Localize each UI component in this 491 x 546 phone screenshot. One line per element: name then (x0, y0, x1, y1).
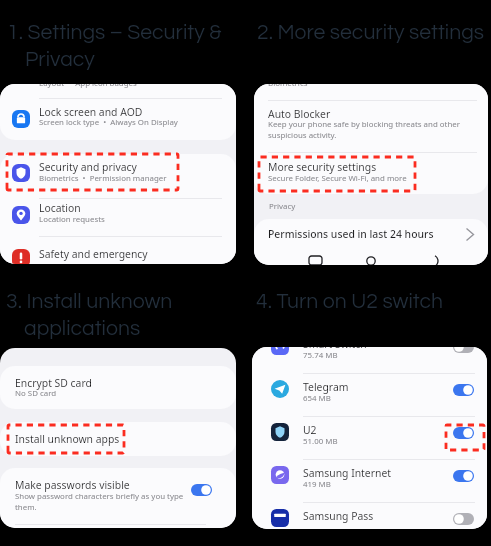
staticText: Keep your phone safe by blocking threats… (268, 119, 461, 141)
staticText: Lock screen and AOD (39, 105, 143, 119)
staticText: Screen lock type • Always On Display (39, 117, 178, 128)
staticText: More security settings (268, 160, 377, 174)
staticText: 654 MB (303, 393, 331, 404)
staticText: Location (39, 201, 81, 215)
staticText: U2 (303, 423, 317, 437)
button[interactable]: Switch on (453, 427, 474, 439)
button[interactable]: Install unknown apps (0, 422, 236, 456)
button[interactable]: Lock screen and AOD (0, 100, 236, 138)
button[interactable]: Security and privacy (0, 154, 236, 198)
staticText: Biometrics (268, 84, 308, 89)
button[interactable]: Samsung Internet (252, 461, 487, 503)
staticText: Encrypt SD card (15, 376, 92, 390)
button[interactable]: More security settings (254, 154, 488, 192)
staticText: Security and privacy (39, 160, 137, 174)
button[interactable]: Switch on (453, 470, 474, 482)
button[interactable]: Make passwords visible (0, 468, 236, 526)
staticText: Samsung Internet (303, 466, 392, 480)
button[interactable]: Switch on (191, 484, 212, 496)
staticText: 4. Turn on U2 switch (256, 291, 443, 313)
button[interactable]: Encrypt SD card (0, 366, 236, 409)
staticText: 419 MB (303, 479, 331, 490)
button[interactable]: Switch on (453, 384, 474, 396)
staticText: Privacy (269, 201, 296, 212)
button[interactable]: Auto Blocker (254, 104, 488, 148)
button[interactable]: Smart Switch (252, 347, 487, 374)
staticText: No SD card (15, 388, 57, 399)
staticText: Samsung Pass (303, 509, 374, 523)
staticText: Secure Folder, Secure Wi-Fi, and more (268, 173, 407, 184)
staticText: Install unknown apps (15, 432, 120, 446)
staticText: Biometrics • Permission manager (39, 173, 167, 184)
staticText: 1. Settings – Security & Privacy (7, 22, 222, 71)
button[interactable]: Switch off (453, 513, 474, 525)
staticText: 2. More security settings (257, 22, 484, 44)
staticText: Layout • App icon badges (39, 84, 137, 89)
button[interactable]: Safety and emergency (0, 236, 236, 264)
staticText: Smart Switch (303, 347, 367, 351)
button[interactable]: U2 (252, 418, 487, 460)
button[interactable]: Switch off (453, 347, 474, 353)
button[interactable]: Samsung Pass (252, 504, 487, 529)
staticText: 3. Install unknown applications (6, 291, 173, 340)
staticText: Safety and emergency (39, 247, 148, 261)
button[interactable]: Location (0, 198, 236, 236)
staticText: Auto Blocker (268, 107, 331, 121)
staticText: Location requests (39, 214, 105, 225)
staticText: 51.00 MB (303, 436, 338, 447)
staticText: 75.74 MB (303, 350, 338, 361)
button[interactable]: Permissions used in last 24 hours (254, 221, 488, 251)
staticText: Show password characters briefly as you … (15, 491, 184, 513)
button[interactable]: Telegram (252, 375, 487, 417)
staticText: Permissions used in last 24 hours (268, 227, 434, 241)
staticText: Make passwords visible (15, 478, 130, 492)
staticText: Telegram (303, 380, 349, 394)
